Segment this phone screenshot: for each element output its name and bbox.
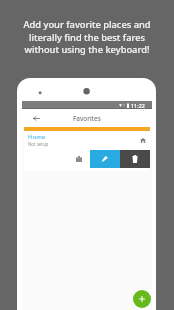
button[interactable]: Back [29, 111, 43, 125]
staticText: Favorites [73, 114, 101, 123]
button[interactable]: Add favorite place [133, 290, 151, 308]
staticText: 11:22 [131, 102, 145, 109]
button[interactable]: Home [24, 127, 150, 171]
staticText: Add your favorite places and literally f… [0, 18, 174, 55]
staticText: Not setup [28, 141, 49, 147]
button[interactable]: Delete [120, 150, 150, 168]
staticText: Home [28, 132, 46, 140]
button[interactable]: Photo [60, 150, 90, 168]
button[interactable]: Edit [90, 150, 120, 168]
